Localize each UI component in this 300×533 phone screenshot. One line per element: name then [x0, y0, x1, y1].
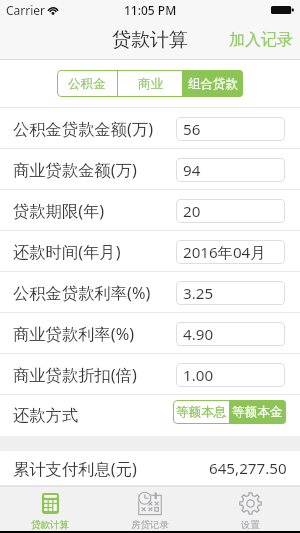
- staticText: 商业贷款金额(万): [13, 159, 137, 181]
- button[interactable]: 公积金: [57, 70, 117, 97]
- button[interactable]: 商业贷款折扣(倍): [0, 354, 300, 395]
- staticText: 商业: [138, 76, 163, 92]
- button[interactable]: 20: [176, 199, 285, 223]
- staticText: 11:05 PM: [124, 2, 177, 18]
- button[interactable]: 3.25: [176, 281, 285, 305]
- staticText: 56: [183, 119, 201, 140]
- staticText: 商业贷款利率(%): [13, 323, 135, 345]
- button[interactable]: 商业: [118, 70, 182, 97]
- staticText: 3.25: [183, 283, 214, 304]
- button[interactable]: 组合贷款: [183, 70, 243, 97]
- staticText: 公积金贷款利率(%): [13, 282, 151, 304]
- staticText: 贷款计算: [31, 519, 69, 531]
- staticText: 等额本金: [232, 404, 283, 420]
- button[interactable]: 加入记录: [222, 22, 300, 58]
- staticText: 2016年04月: [183, 242, 266, 263]
- button[interactable]: 4.90: [176, 322, 285, 346]
- staticText: 商业贷款折扣(倍): [13, 364, 137, 386]
- staticText: 94: [183, 160, 201, 181]
- button[interactable]: 公积金贷款金额(万): [0, 108, 300, 149]
- staticText: 20: [183, 201, 201, 222]
- staticText: 设置: [241, 519, 260, 531]
- button[interactable]: 1.00: [176, 363, 285, 387]
- staticText: 等额本息: [176, 404, 227, 420]
- staticText: 加入记录: [229, 30, 293, 50]
- button[interactable]: 设置: [200, 486, 300, 531]
- button[interactable]: 56: [176, 117, 285, 141]
- button[interactable]: 累计支付利息(元): [0, 451, 300, 486]
- staticText: 公积金: [68, 76, 106, 92]
- button[interactable]: 商业贷款金额(万): [0, 149, 300, 190]
- staticText: Carrier: [6, 2, 46, 18]
- button[interactable]: 2016年04月: [176, 240, 285, 264]
- staticText: 贷款计算: [112, 28, 188, 52]
- staticText: 组合贷款: [188, 76, 238, 92]
- button[interactable]: 贷款期限(年): [0, 190, 300, 231]
- staticText: 贷款期限(年): [13, 200, 105, 222]
- staticText: 1.00: [183, 365, 214, 386]
- button[interactable]: 公积金贷款利率(%): [0, 272, 300, 313]
- button[interactable]: 94: [176, 158, 285, 182]
- button[interactable]: 等额本息: [173, 400, 229, 424]
- button[interactable]: 还款方式: [0, 395, 300, 436]
- button[interactable]: 还款时间(年月): [0, 231, 300, 272]
- staticText: 房贷记录: [131, 519, 169, 531]
- staticText: 还款时间(年月): [13, 241, 121, 263]
- staticText: 还款方式: [13, 405, 79, 426]
- button[interactable]: 贷款计算: [0, 486, 100, 531]
- staticText: 645,277.50: [209, 458, 287, 479]
- staticText: 公积金贷款金额(万): [13, 118, 154, 140]
- staticText: 4.90: [183, 324, 214, 345]
- button[interactable]: 等额本金: [229, 400, 286, 424]
- button[interactable]: 商业贷款利率(%): [0, 313, 300, 354]
- button[interactable]: 房贷记录: [100, 486, 200, 531]
- staticText: 累计支付利息(元): [13, 458, 137, 480]
